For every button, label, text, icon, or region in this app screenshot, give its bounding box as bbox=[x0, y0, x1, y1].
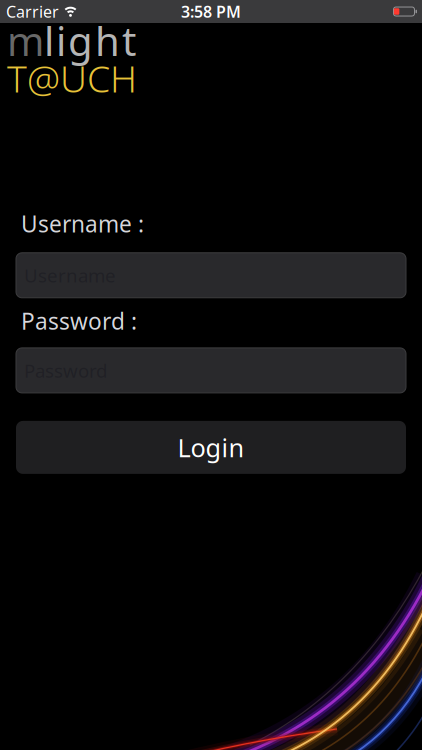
staticText: T@UCH bbox=[7, 53, 137, 103]
staticText: Username : bbox=[21, 209, 144, 239]
staticText: light bbox=[44, 14, 136, 67]
staticText: Password : bbox=[21, 306, 137, 336]
staticText: Login bbox=[177, 431, 244, 464]
button[interactable]: Login bbox=[16, 421, 406, 474]
staticText: Carrier bbox=[6, 1, 59, 22]
staticText: m bbox=[7, 14, 44, 67]
staticText: 3:58 PM bbox=[181, 1, 241, 22]
